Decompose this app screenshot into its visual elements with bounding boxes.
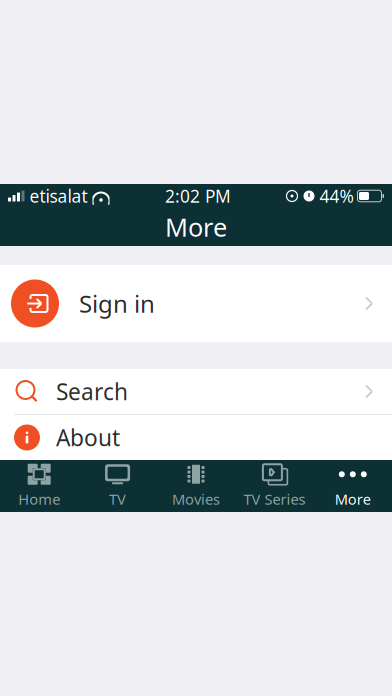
staticText: Home [18,489,60,509]
staticText: 2:02 PM [165,184,231,207]
staticText: TV Series [243,489,305,509]
staticText: TV [109,489,126,509]
button[interactable]: TV Series [235,460,314,512]
staticText: Movies [172,489,220,509]
button[interactable]: Search [0,369,392,414]
button[interactable]: TV [78,460,157,512]
button[interactable]: About [0,415,392,460]
staticText: Search [56,376,128,406]
button[interactable]: Home [0,460,78,512]
button[interactable]: More [314,460,392,512]
staticText: More [165,210,227,244]
button[interactable]: Movies [157,460,235,512]
staticText: More [335,489,371,509]
staticText: About [56,422,120,452]
staticText: Sign in [79,288,155,319]
button[interactable]: Sign in [0,265,392,342]
staticText: etisalat [29,184,87,207]
staticText: 44% [319,184,353,207]
